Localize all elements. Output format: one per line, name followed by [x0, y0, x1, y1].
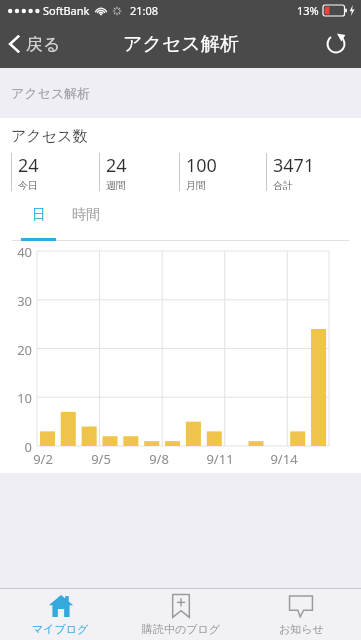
staticText: 時間 [72, 206, 100, 224]
staticText: 30 [4, 292, 32, 310]
button[interactable]: 時間 [66, 206, 106, 224]
staticText: 週間 [106, 179, 126, 191]
staticText: アクセス数 [11, 127, 88, 146]
staticText: 13% [297, 3, 319, 18]
staticText: 9/11 [202, 450, 238, 468]
staticText: 購読中のブログ [142, 622, 221, 636]
staticText: 10 [4, 389, 32, 407]
staticText: 24 [18, 153, 39, 178]
staticText: 3471 [273, 153, 315, 178]
staticText: 今日 [18, 179, 38, 191]
staticText: 20 [4, 341, 32, 359]
staticText: 100 [186, 153, 217, 178]
staticText: 9/5 [83, 450, 119, 468]
staticText: 9/8 [141, 450, 177, 468]
staticText: 月間 [186, 179, 206, 191]
staticText: 9/2 [25, 450, 61, 468]
staticText: アクセス解析 [11, 85, 91, 101]
staticText: 日 [32, 206, 46, 224]
staticText: アクセス解析 [123, 32, 239, 56]
staticText: マイブログ [32, 622, 89, 636]
button[interactable]: 戻る [0, 27, 71, 61]
button[interactable]: お知らせ [241, 589, 361, 640]
staticText: 21:08 [130, 3, 159, 18]
staticText: SoftBank [43, 3, 90, 18]
button[interactable]: Reload [311, 23, 361, 65]
staticText: お知らせ [279, 622, 324, 636]
button[interactable]: 日 [21, 206, 56, 224]
staticText: 0 [4, 438, 32, 456]
staticText: 40 [4, 243, 32, 261]
button[interactable]: 購読中のブログ [121, 589, 241, 640]
staticText: 戻る [26, 34, 61, 55]
staticText: 24 [106, 153, 127, 178]
staticText: 9/14 [266, 450, 302, 468]
button[interactable]: マイブログ [0, 589, 121, 640]
staticText: 合計 [273, 179, 293, 191]
